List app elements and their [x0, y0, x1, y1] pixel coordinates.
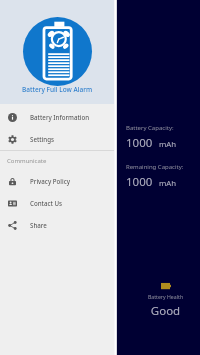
staticText: Share	[30, 221, 47, 229]
staticText: Battery Information	[30, 113, 90, 121]
staticText: Battery Full Low Alarm	[22, 85, 93, 94]
staticText: Contact Us	[30, 199, 63, 207]
button[interactable]: Battery Information	[0, 106, 114, 128]
staticText: 1000	[126, 174, 153, 190]
staticText: Good	[135, 303, 196, 319]
button[interactable]: Share	[0, 214, 114, 236]
staticText: mAh	[159, 139, 177, 150]
staticText: Battery Health	[135, 293, 196, 300]
staticText: Settings	[30, 135, 55, 143]
button[interactable]: Settings	[0, 128, 114, 150]
staticText: Battery Capacity:	[126, 124, 174, 132]
staticText: Privacy Policy	[30, 177, 70, 185]
staticText: 1000	[126, 135, 153, 151]
staticText: mAh	[159, 178, 177, 189]
button[interactable]: Contact Us	[0, 192, 114, 214]
staticText: Communicate	[7, 157, 47, 165]
button[interactable]: Battery Full Low Alarm	[0, 0, 114, 104]
button[interactable]: Privacy Policy	[0, 170, 114, 192]
staticText: Remaining Capacity:	[126, 163, 184, 171]
